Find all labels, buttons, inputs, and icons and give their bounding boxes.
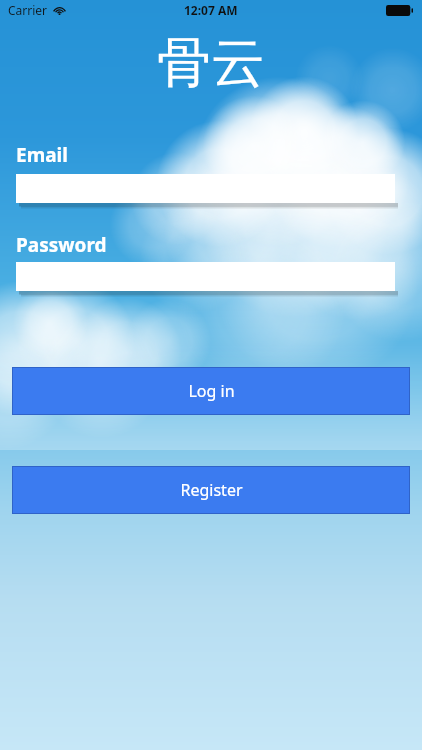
button[interactable]: Log in	[12, 367, 410, 415]
staticText: Register	[180, 479, 243, 501]
staticText: Log in	[188, 380, 235, 402]
staticText: Password	[16, 232, 107, 258]
other: Battery full	[386, 5, 413, 16]
staticText: 12:07 AM	[184, 2, 238, 18]
staticText: Carrier	[8, 2, 48, 18]
button[interactable]: Register	[12, 466, 410, 514]
staticText: Email	[16, 142, 68, 168]
staticText: 骨云	[157, 29, 265, 97]
other: Wi-Fi signal	[53, 4, 66, 17]
